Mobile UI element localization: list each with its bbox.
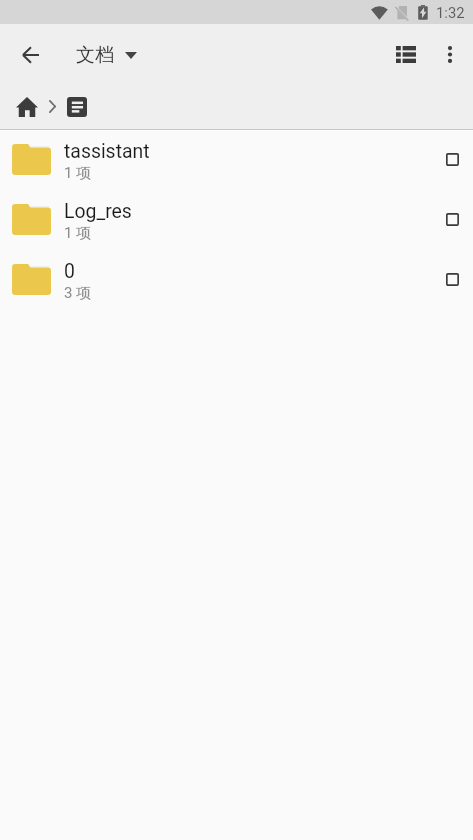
button[interactable]: Home [4, 90, 50, 124]
button[interactable]: Select tassistant [432, 139, 472, 179]
staticText: Log_res [64, 200, 132, 223]
button[interactable]: Documents [61, 91, 93, 123]
staticText: tassistant [64, 140, 150, 163]
staticText: 0 [64, 260, 75, 283]
staticText: 文档 [76, 43, 114, 67]
button[interactable]: More options [426, 30, 473, 78]
staticText: 1:32 [436, 4, 465, 21]
button[interactable]: tassistant [0, 129, 473, 189]
button[interactable]: Back [6, 31, 54, 79]
staticText: 3 项 [64, 284, 92, 303]
button[interactable]: 文档 [68, 31, 147, 79]
staticText: 1 项 [64, 224, 92, 243]
button[interactable]: Log_res [0, 189, 473, 249]
button[interactable]: Switch list view [382, 30, 430, 78]
button[interactable]: Select 0 [432, 259, 472, 299]
button[interactable]: 0 [0, 249, 473, 309]
staticText: 1 项 [64, 164, 92, 183]
button[interactable]: Select Log_res [432, 199, 472, 239]
